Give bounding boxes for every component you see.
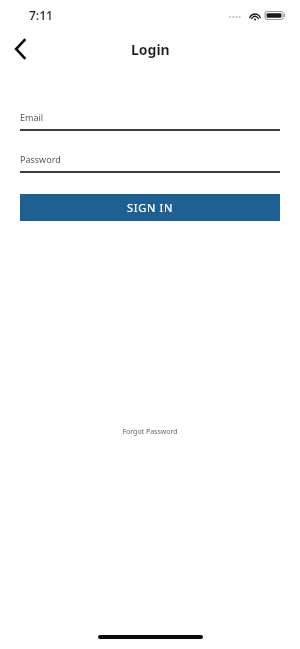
staticText: Password: [20, 153, 61, 165]
button[interactable]: Forgot Password: [0, 427, 300, 437]
staticText: 7:11: [29, 7, 53, 23]
button[interactable]: Back: [0, 30, 40, 68]
staticText: Email: [20, 111, 44, 123]
staticText: Forgot Password: [122, 427, 178, 437]
button[interactable]: Password: [20, 153, 280, 173]
button[interactable]: SIGN IN: [20, 194, 280, 221]
button[interactable]: Email: [20, 111, 280, 131]
staticText: Login: [131, 40, 170, 59]
staticText: SIGN IN: [127, 200, 173, 215]
